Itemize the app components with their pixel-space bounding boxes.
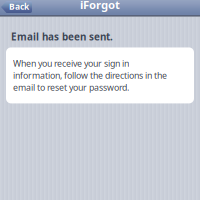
staticText: iForgot <box>80 0 120 12</box>
staticText: email to reset your password. <box>13 81 129 93</box>
button[interactable]: Back <box>1 1 32 13</box>
staticText: Email has been sent. <box>11 30 113 43</box>
staticText: Back <box>9 1 29 12</box>
staticText: When you receive your sign in <box>13 57 129 69</box>
staticText: information, follow the directions in th… <box>13 69 167 81</box>
